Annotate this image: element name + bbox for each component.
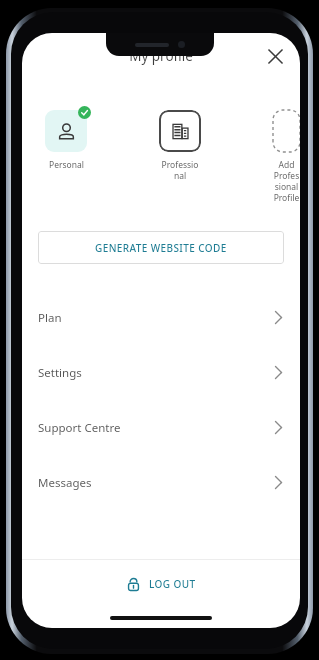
staticText: Settings xyxy=(38,365,82,381)
staticText: GENERATE WEBSITE CODE xyxy=(95,241,227,255)
button[interactable]: Plan xyxy=(22,290,300,345)
staticText: Professional xyxy=(159,159,201,181)
staticText: Personal xyxy=(49,159,84,171)
button[interactable]: Support Centre xyxy=(22,400,300,455)
staticText: Support Centre xyxy=(38,420,121,436)
button[interactable]: Messages xyxy=(22,455,300,510)
button[interactable]: GENERATE WEBSITE CODE xyxy=(38,231,284,264)
staticText: Plan xyxy=(38,310,62,326)
button[interactable]: Close xyxy=(258,39,292,73)
button[interactable]: LOG OUT xyxy=(22,560,300,608)
button[interactable]: Add professional profile xyxy=(273,110,300,203)
button[interactable]: Personal profile xyxy=(45,110,87,171)
button[interactable]: Professional profile xyxy=(159,110,201,181)
staticText: Add Professional Profile xyxy=(273,159,300,203)
staticText: LOG OUT xyxy=(149,577,196,591)
staticText: My profile xyxy=(129,47,193,65)
staticText: Messages xyxy=(38,475,92,491)
button[interactable]: Settings xyxy=(22,345,300,400)
